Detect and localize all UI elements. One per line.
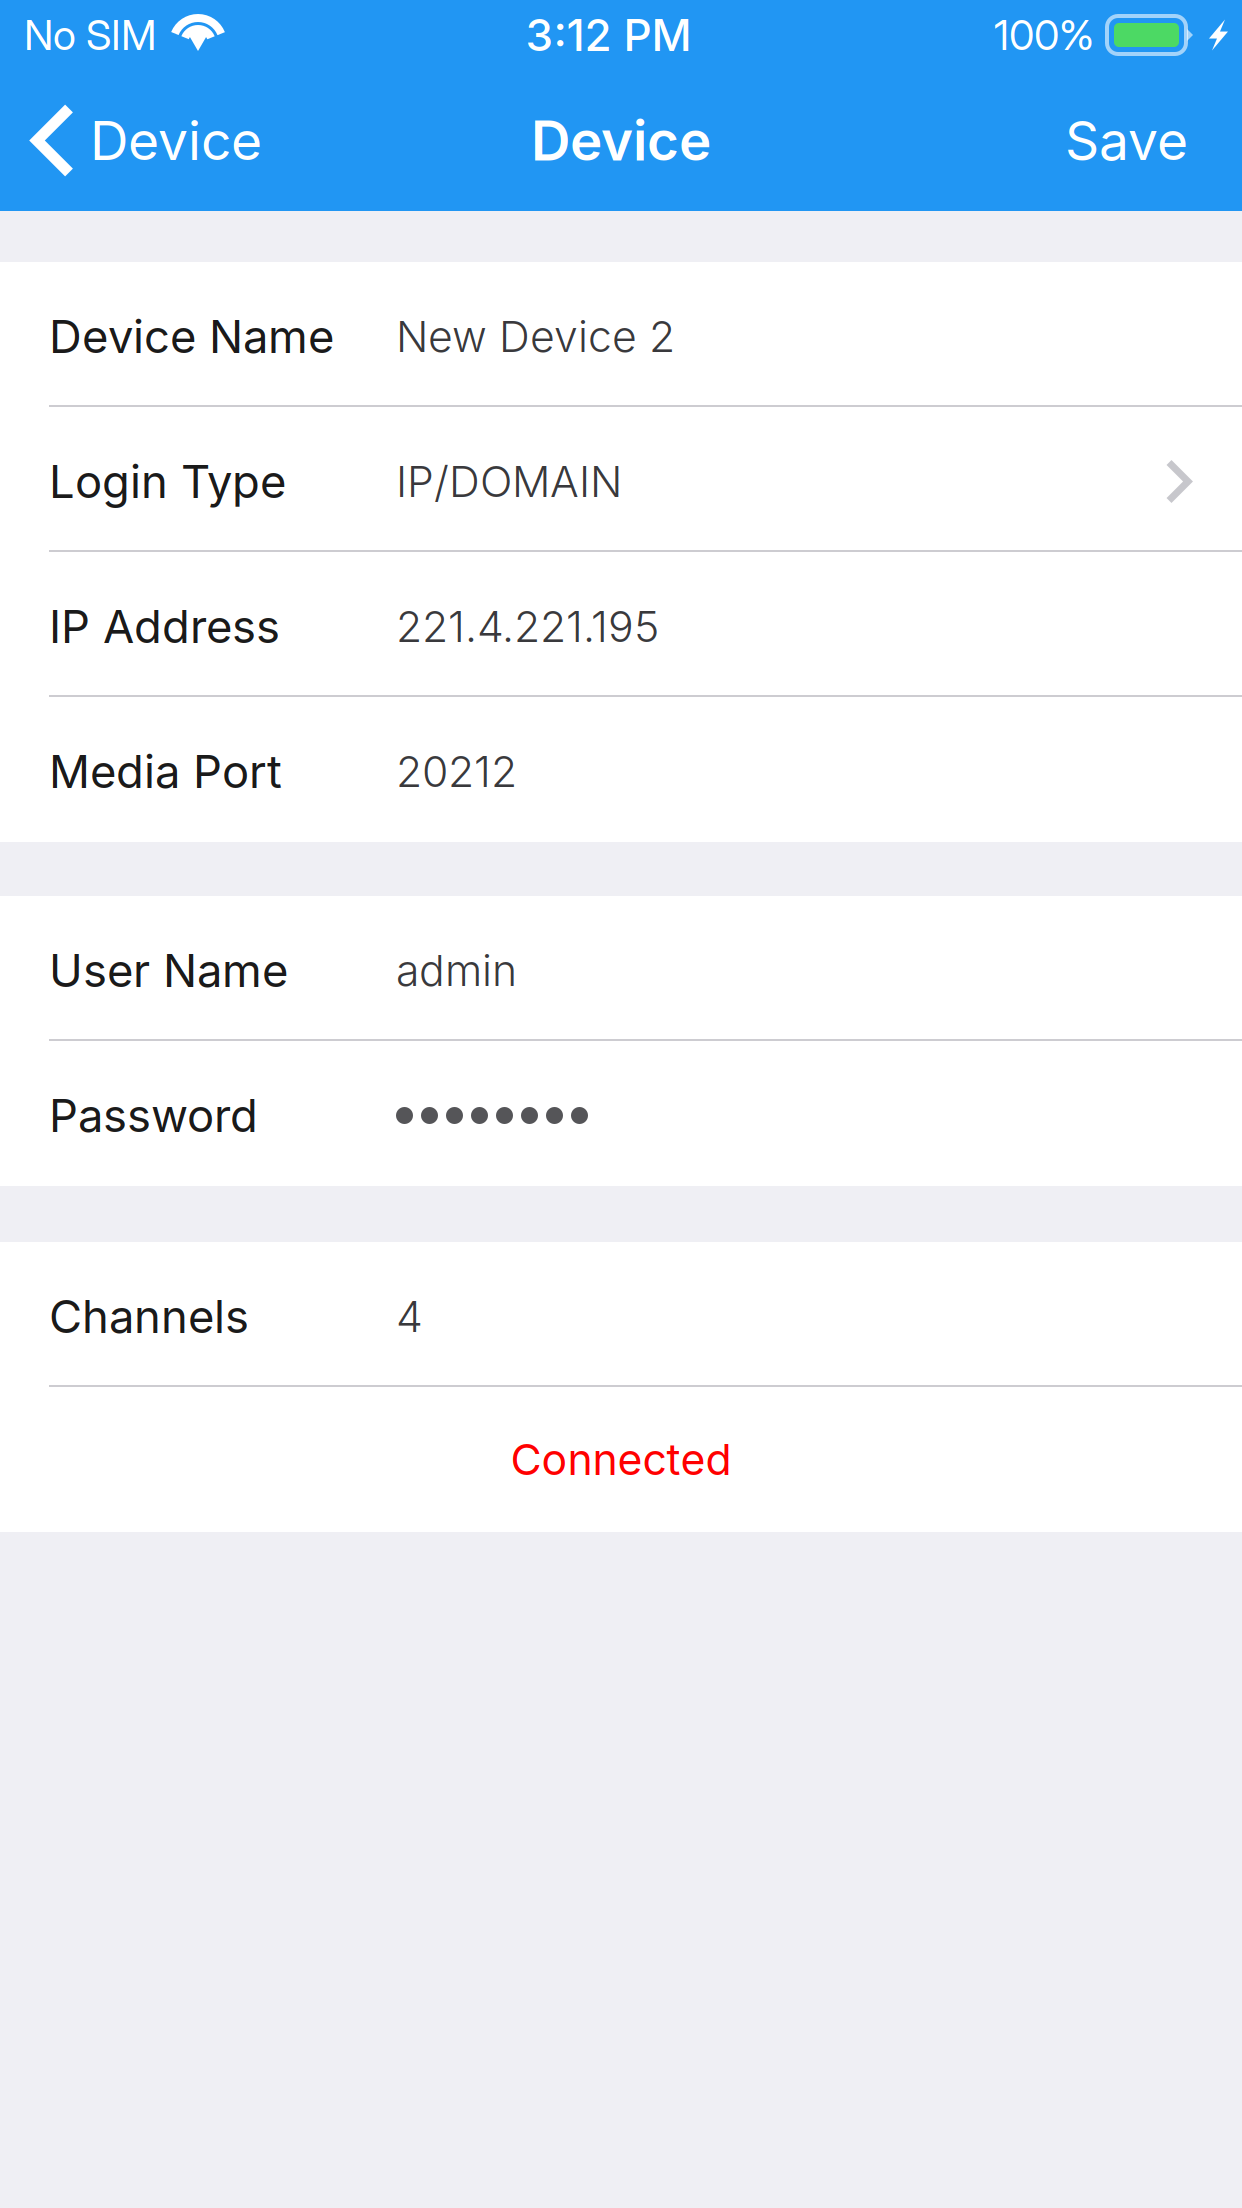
staticText: IP Address xyxy=(49,599,280,654)
staticText: Device xyxy=(90,108,262,173)
staticText: No SIM xyxy=(24,10,157,60)
staticText: New Device 2 xyxy=(396,311,675,362)
button[interactable]: Device xyxy=(0,70,286,211)
staticText: Login Type xyxy=(49,454,286,509)
staticText: 20212 xyxy=(396,746,517,797)
staticText: Password xyxy=(49,1088,258,1143)
staticText: admin xyxy=(396,945,517,996)
staticText: IP/DOMAIN xyxy=(396,456,622,507)
staticText: Channels xyxy=(49,1289,249,1344)
staticText: Save xyxy=(1065,108,1188,173)
staticText: Device Name xyxy=(49,309,334,364)
staticText: 4 xyxy=(396,1291,423,1342)
staticText: 3:12 PM xyxy=(525,8,691,62)
staticText: 100% xyxy=(994,10,1094,60)
staticText: 221.4.221.195 xyxy=(396,601,659,652)
staticText: Device xyxy=(531,107,711,173)
staticText: Connected xyxy=(510,1434,731,1485)
staticText: User Name xyxy=(49,943,288,998)
staticText: Media Port xyxy=(49,744,282,799)
button[interactable]: Save xyxy=(1015,70,1242,211)
button[interactable]: Login Type xyxy=(0,407,1242,552)
